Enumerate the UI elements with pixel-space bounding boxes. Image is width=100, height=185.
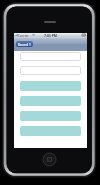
button[interactable]: Home <box>43 153 56 166</box>
staticText: Carrier <box>18 33 29 37</box>
staticText: 7:03 PM <box>44 33 57 37</box>
button[interactable]: Round 1 <box>16 41 33 47</box>
button[interactable] <box>20 81 81 91</box>
button[interactable] <box>20 111 81 121</box>
button[interactable] <box>20 66 81 75</box>
button[interactable] <box>20 126 81 136</box>
staticText: Round 1 <box>18 42 31 46</box>
button[interactable] <box>20 52 81 61</box>
button[interactable] <box>20 96 81 106</box>
